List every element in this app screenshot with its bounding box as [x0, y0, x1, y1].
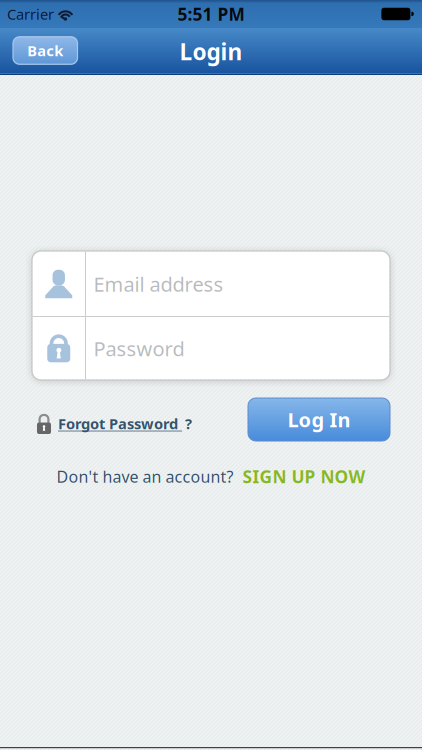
staticText: Forgot Password	[58, 414, 182, 433]
button[interactable]: Log In	[248, 398, 390, 441]
staticText: Don't have an account?	[56, 466, 233, 487]
button[interactable]: Forgot Password	[37, 409, 192, 430]
staticText: Email address	[93, 271, 223, 297]
staticText: Back	[27, 41, 63, 60]
staticText: Carrier	[7, 4, 54, 24]
staticText: Password	[93, 335, 184, 362]
button[interactable]: Password	[32, 317, 390, 380]
staticText: Login	[179, 36, 242, 66]
staticText: Log In	[287, 406, 350, 433]
staticText: SIGN UP NOW	[242, 465, 365, 488]
button[interactable]: Email address	[32, 251, 390, 317]
staticText: ?	[185, 414, 192, 433]
button[interactable]: Back	[13, 37, 77, 64]
button[interactable]: SIGN UP NOW	[242, 465, 365, 488]
staticText: 5:51 PM	[177, 2, 244, 25]
